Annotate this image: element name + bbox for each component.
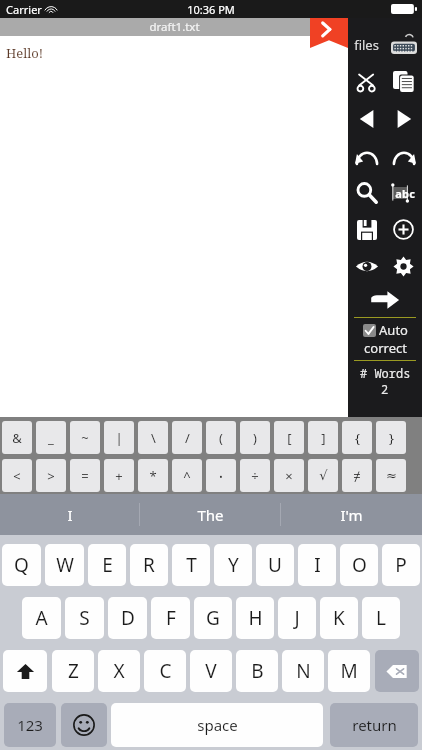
staticText: N [296,658,311,684]
button[interactable]: Settings [385,248,422,285]
button[interactable]: [ [274,421,304,454]
button[interactable]: Paste [385,63,422,100]
button[interactable]: Emoji [61,703,107,747]
button[interactable]: > [36,459,66,492]
button[interactable]: X [98,650,140,692]
staticText: c [409,186,415,201]
staticText: & [12,429,22,447]
button[interactable]: Search [348,174,385,211]
button[interactable]: • [206,459,236,492]
staticText: ] [321,429,326,447]
button[interactable]: I [0,494,140,535]
button[interactable]: O [340,544,378,586]
button[interactable]: Z [52,650,94,692]
staticText: Q [14,552,29,578]
button[interactable]: A [22,597,61,639]
button[interactable]: S [65,597,104,639]
button[interactable]: + [104,459,134,492]
button[interactable]: Open panel [310,18,348,48]
staticText: V [205,658,217,684]
button[interactable]: K [320,597,358,639]
staticText: | [115,429,123,447]
button[interactable]: Select text [385,174,422,211]
button[interactable]: ) [240,421,270,454]
button[interactable]: ^ [172,459,202,492]
button[interactable]: _ [36,421,66,454]
button[interactable]: Shift [3,650,47,692]
staticText: correct [364,339,407,357]
button[interactable]: Undo [348,137,385,174]
button[interactable]: T [172,544,210,586]
button[interactable]: & [2,421,32,454]
button[interactable]: New [385,211,422,248]
staticText: ) [253,429,257,447]
button[interactable]: N [282,650,324,692]
button[interactable]: * [138,459,168,492]
button[interactable]: Next [385,100,422,137]
button[interactable]: = [70,459,100,492]
button[interactable]: Backspace [375,650,419,692]
button[interactable]: return [330,703,418,747]
staticText: J [294,605,300,631]
button[interactable]: ] [308,421,338,454]
button[interactable]: { [342,421,372,454]
button[interactable]: } [376,421,406,454]
button[interactable]: L [362,597,400,639]
button[interactable]: P [382,544,420,586]
button[interactable]: Y [214,544,252,586]
button[interactable]: I'm [281,494,422,535]
button[interactable]: U [256,544,294,586]
staticText: C [159,658,172,684]
button[interactable]: Q [2,544,41,586]
button[interactable]: I [298,544,336,586]
staticText: O [352,552,367,578]
staticText: R [143,552,155,578]
button[interactable]: ÷ [240,459,270,492]
staticText: Z [68,658,79,684]
button[interactable]: M [328,650,370,692]
button[interactable]: Cut [348,63,385,100]
button[interactable]: E [88,544,126,586]
staticText: a [395,186,402,201]
button[interactable]: ~ [70,421,100,454]
button[interactable]: / [172,421,202,454]
staticText: 10:36 PM [187,2,235,17]
button[interactable]: Share [348,285,422,315]
button[interactable]: Files [348,26,385,63]
button[interactable]: D [108,597,147,639]
button[interactable]: ( [206,421,236,454]
button[interactable]: × [274,459,304,492]
button[interactable]: ≠ [342,459,372,492]
button[interactable]: \ [138,421,168,454]
button[interactable]: 123 [4,703,56,747]
button[interactable]: W [45,544,84,586]
button[interactable]: Auto [348,318,422,360]
button[interactable]: Redo [385,137,422,174]
button[interactable]: B [236,650,278,692]
staticText: } [389,429,394,447]
staticText: b [402,186,409,201]
button[interactable]: ≈ [376,459,406,492]
button[interactable]: | [104,421,134,454]
button[interactable]: space [111,703,323,747]
button[interactable]: G [194,597,232,639]
staticText: _ [48,429,54,447]
staticText: I [67,505,73,525]
button[interactable]: Preview [348,248,385,285]
staticText: \ [151,429,156,447]
button[interactable]: R [130,544,168,586]
staticText: P [395,552,407,578]
button[interactable]: Keyboard [385,26,422,63]
button[interactable]: J [278,597,316,639]
staticText: H [248,605,263,631]
button[interactable]: Previous [348,100,385,137]
button[interactable]: C [144,650,186,692]
button[interactable]: F [151,597,190,639]
button[interactable]: The [140,494,281,535]
button[interactable]: Save [348,211,385,248]
button[interactable]: H [236,597,274,639]
button[interactable]: V [190,650,232,692]
button[interactable]: √ [308,459,338,492]
button[interactable]: < [2,459,32,492]
staticText: Auto [379,321,408,339]
